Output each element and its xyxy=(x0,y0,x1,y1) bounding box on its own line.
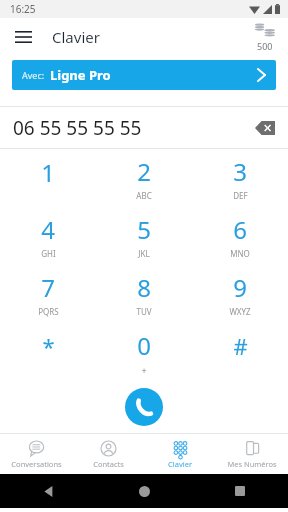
staticText: * xyxy=(42,331,55,361)
button[interactable]: Avec: xyxy=(12,60,276,90)
button[interactable]: Clavier xyxy=(144,434,216,474)
button[interactable]: 7 xyxy=(0,265,96,323)
staticText: Ligne Pro xyxy=(50,66,111,84)
staticText: 8 xyxy=(137,271,151,304)
button[interactable]: 4 xyxy=(0,207,96,265)
staticText: Conversations xyxy=(11,459,62,469)
staticText: 5 xyxy=(137,213,151,246)
button[interactable]: Conversations xyxy=(0,434,72,474)
button[interactable]: Home xyxy=(96,474,192,508)
staticText: Contacts xyxy=(93,459,124,469)
staticText: 9 xyxy=(233,271,247,304)
staticText: DEF xyxy=(233,190,248,201)
staticText: Mes Numéros xyxy=(227,459,277,469)
button[interactable]: Credits 500 xyxy=(248,22,282,52)
button[interactable]: Menu xyxy=(8,22,38,52)
staticText: 1 xyxy=(41,156,55,189)
button[interactable]: Mes Numéros xyxy=(216,434,288,474)
button[interactable]: Contacts xyxy=(72,434,144,474)
staticText: 7 xyxy=(41,271,55,304)
button[interactable]: Backspace xyxy=(250,113,280,143)
button[interactable]: 2 xyxy=(96,149,192,207)
staticText: 0 xyxy=(137,329,151,362)
staticText: Clavier xyxy=(52,27,100,47)
staticText: 06 55 55 55 55 xyxy=(13,115,142,141)
button[interactable]: 6 xyxy=(192,207,288,265)
staticText: 2 xyxy=(137,155,151,188)
staticText: ABC xyxy=(136,190,152,201)
staticText: 4 xyxy=(41,213,55,246)
button[interactable]: Call xyxy=(125,388,163,426)
staticText: GHI xyxy=(41,248,56,259)
button[interactable]: 8 xyxy=(96,265,192,323)
staticText: JKL xyxy=(138,248,150,259)
staticText: Clavier xyxy=(168,459,192,469)
staticText: 3 xyxy=(233,155,247,188)
button[interactable]: 3 xyxy=(192,149,288,207)
button[interactable]: # xyxy=(192,323,288,381)
button[interactable]: * xyxy=(0,323,96,381)
button[interactable]: 9 xyxy=(192,265,288,323)
button[interactable]: 5 xyxy=(96,207,192,265)
button[interactable]: Back xyxy=(0,474,96,508)
button[interactable]: Recents xyxy=(192,474,288,508)
staticText: 6 xyxy=(233,213,247,246)
staticText: 16:25 xyxy=(10,2,36,16)
staticText: Avec: xyxy=(22,69,45,81)
staticText: + xyxy=(141,364,147,376)
staticText: WXYZ xyxy=(229,306,251,317)
staticText: TUV xyxy=(136,306,152,317)
staticText: 500 xyxy=(257,40,273,52)
staticText: PQRS xyxy=(38,306,59,317)
button[interactable]: 1 xyxy=(0,149,96,207)
staticText: # xyxy=(233,331,248,361)
button[interactable]: 0 xyxy=(96,323,192,381)
staticText: MNO xyxy=(230,248,250,259)
